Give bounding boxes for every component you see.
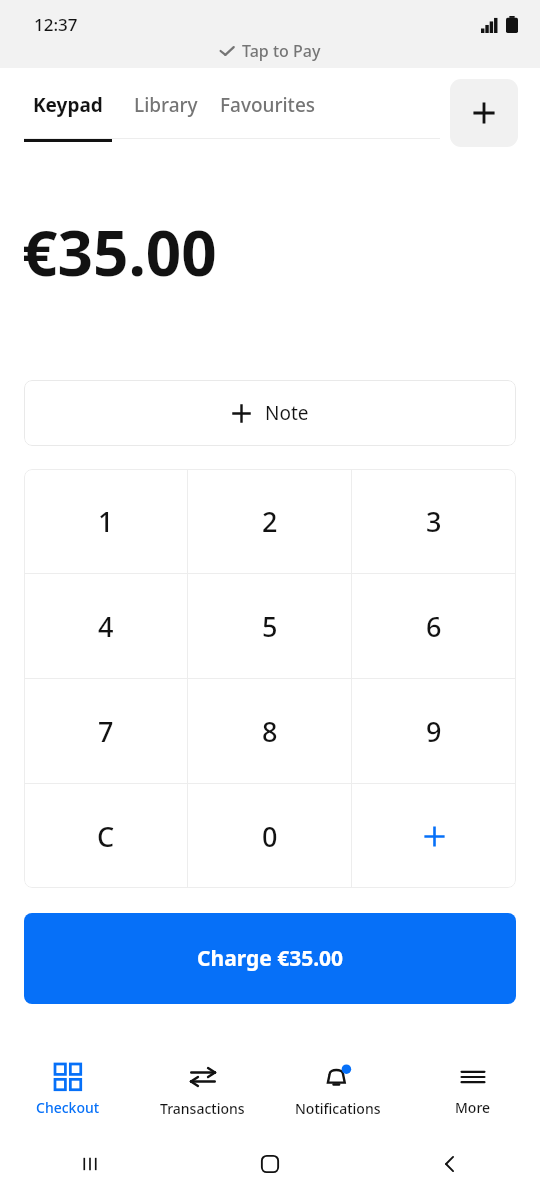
staticText: Library bbox=[134, 92, 198, 118]
button[interactable]: More bbox=[405, 1052, 540, 1128]
button[interactable]: Back bbox=[360, 1128, 540, 1200]
button[interactable] bbox=[352, 784, 516, 888]
staticText: 8 bbox=[262, 713, 278, 750]
staticText: Charge €35.00 bbox=[197, 944, 344, 973]
button[interactable]: 9 bbox=[352, 679, 516, 783]
staticText: 3 bbox=[426, 503, 442, 540]
button[interactable]: C bbox=[24, 784, 188, 888]
button[interactable]: 0 bbox=[188, 784, 352, 888]
button[interactable]: Charge €35.00 bbox=[24, 913, 516, 1004]
button[interactable]: 6 bbox=[352, 574, 516, 678]
staticText: Favourites bbox=[220, 92, 316, 118]
staticText: Checkout bbox=[36, 1098, 100, 1117]
staticText: 9 bbox=[426, 713, 442, 750]
button[interactable]: Transactions bbox=[135, 1052, 270, 1128]
button[interactable]: 2 bbox=[188, 469, 352, 573]
button[interactable]: 7 bbox=[24, 679, 188, 783]
button[interactable]: Keypad bbox=[24, 92, 112, 142]
staticText: Transactions bbox=[160, 1099, 245, 1118]
staticText: 7 bbox=[98, 713, 114, 750]
staticText: Note bbox=[265, 400, 309, 426]
button[interactable]: Library bbox=[134, 92, 198, 118]
staticText: 6 bbox=[426, 608, 442, 645]
staticText: 5 bbox=[262, 608, 278, 645]
button[interactable]: Recents bbox=[0, 1128, 180, 1200]
button[interactable]: Add item bbox=[450, 79, 518, 147]
button[interactable]: Home bbox=[180, 1128, 360, 1200]
staticText: Notifications bbox=[295, 1099, 381, 1118]
staticText: 0 bbox=[262, 818, 278, 855]
button[interactable]: 4 bbox=[24, 574, 188, 678]
button[interactable]: Note bbox=[24, 380, 516, 446]
staticText: Keypad bbox=[33, 92, 103, 118]
staticText: Tap to Pay bbox=[242, 40, 321, 62]
button[interactable]: Favourites bbox=[220, 92, 316, 118]
staticText: 12:37 bbox=[34, 13, 78, 36]
staticText: C bbox=[97, 818, 115, 855]
button[interactable]: 8 bbox=[188, 679, 352, 783]
staticText: €35.00 bbox=[22, 210, 217, 294]
button[interactable]: 5 bbox=[188, 574, 352, 678]
button[interactable]: 3 bbox=[352, 469, 516, 573]
staticText: 4 bbox=[98, 608, 114, 645]
staticText: More bbox=[455, 1098, 491, 1117]
staticText: 1 bbox=[98, 503, 114, 540]
button[interactable]: Checkout bbox=[0, 1052, 135, 1128]
staticText: 2 bbox=[262, 503, 278, 540]
button[interactable]: Notifications bbox=[270, 1052, 405, 1128]
button[interactable]: 1 bbox=[24, 469, 188, 573]
